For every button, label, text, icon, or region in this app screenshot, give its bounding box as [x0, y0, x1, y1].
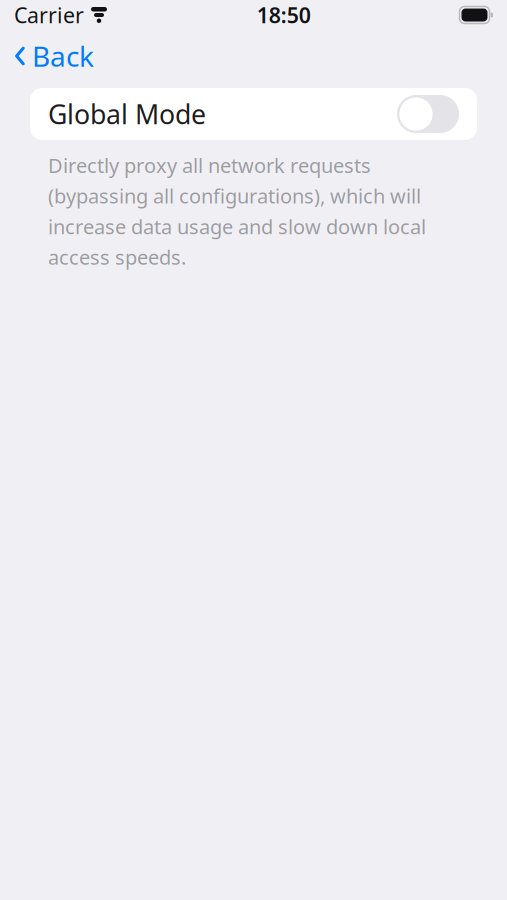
staticText: Back: [32, 37, 94, 75]
button[interactable]: Back: [0, 29, 108, 83]
staticText: Carrier: [14, 1, 84, 29]
button[interactable]: Global Mode: [397, 95, 459, 133]
staticText: 18:50: [257, 1, 311, 29]
staticText: Directly proxy all network requests (byp…: [48, 152, 426, 270]
staticText: Global Mode: [48, 96, 206, 132]
